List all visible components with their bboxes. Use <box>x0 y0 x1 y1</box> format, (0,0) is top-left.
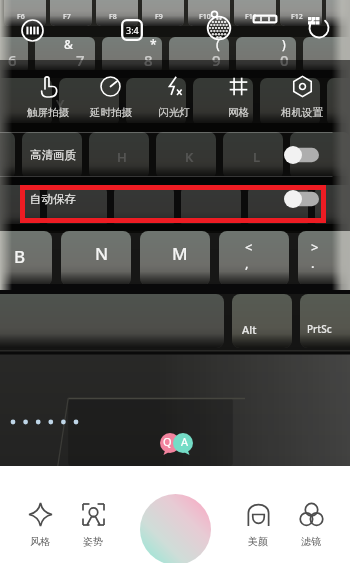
button[interactable]: 触屏拍摄 <box>16 76 79 119</box>
staticText: 网格 <box>228 106 249 119</box>
button[interactable]: Beauty effects <box>205 10 233 38</box>
staticText: N <box>95 242 109 265</box>
button[interactable]: Burst mode <box>19 17 45 43</box>
staticText: * <box>150 36 157 52</box>
staticText: 相机设置 <box>281 106 323 119</box>
staticText: 6 <box>8 50 17 70</box>
button[interactable]: 姿势 <box>71 503 115 548</box>
staticText: Alt <box>242 322 257 337</box>
button[interactable]: 延时拍摄 <box>79 76 142 119</box>
button[interactable]: 闪光灯 <box>142 76 206 119</box>
staticText: 闪光灯 <box>158 106 190 119</box>
button[interactable]: 风格 <box>18 503 62 548</box>
button[interactable]: 自动保存 <box>0 177 350 220</box>
button[interactable]: 高清画质 <box>0 133 350 176</box>
staticText: , <box>245 254 249 272</box>
staticText: 3:4 <box>126 24 139 36</box>
staticText: H <box>117 148 127 166</box>
staticText: F12 <box>291 12 303 22</box>
staticText: > <box>311 238 319 256</box>
staticText: 8 <box>144 50 153 70</box>
button[interactable]: Aspect ratio 3 to 4 <box>121 19 143 41</box>
button[interactable]: Switch camera <box>305 14 333 42</box>
staticText: Q <box>163 434 172 449</box>
button[interactable]: Shutter <box>140 494 211 563</box>
staticText: 高清画质 <box>30 148 76 162</box>
staticText: Y <box>56 95 65 114</box>
staticText: 0 <box>280 50 289 70</box>
staticText: F9 <box>155 12 163 22</box>
staticText: ( <box>216 36 220 52</box>
staticText: F6 <box>17 12 25 22</box>
staticText: F10 <box>199 12 211 22</box>
staticText: M <box>172 242 188 265</box>
staticText: 触屏拍摄 <box>27 106 69 119</box>
staticText: 滤镜 <box>301 535 321 548</box>
button[interactable]: 美颜 <box>236 503 280 548</box>
staticText: 风格 <box>30 535 50 548</box>
button[interactable]: 相机设置 <box>270 76 334 119</box>
staticText: F11 <box>245 12 257 22</box>
staticText: 姿势 <box>83 535 103 548</box>
staticText: 美颜 <box>248 535 268 548</box>
button[interactable]: 滤镜 <box>289 503 333 548</box>
staticText: B <box>14 245 26 268</box>
staticText: ) <box>282 36 286 52</box>
staticText: F7 <box>63 12 71 22</box>
staticText: A <box>181 434 189 449</box>
staticText: 自动保存 <box>30 192 76 206</box>
staticText: & <box>64 36 73 52</box>
staticText: 7 <box>76 50 85 70</box>
staticText: F8 <box>109 12 117 22</box>
staticText: 9 <box>212 50 221 70</box>
staticText: K <box>185 148 194 166</box>
staticText: PrtSc <box>307 322 332 336</box>
button[interactable]: Collage layout <box>250 10 280 28</box>
staticText: < <box>245 238 253 256</box>
staticText: 延时拍摄 <box>90 106 132 119</box>
staticText: L <box>253 148 260 166</box>
staticText: . <box>311 254 315 272</box>
button[interactable]: 网格 <box>206 76 270 119</box>
